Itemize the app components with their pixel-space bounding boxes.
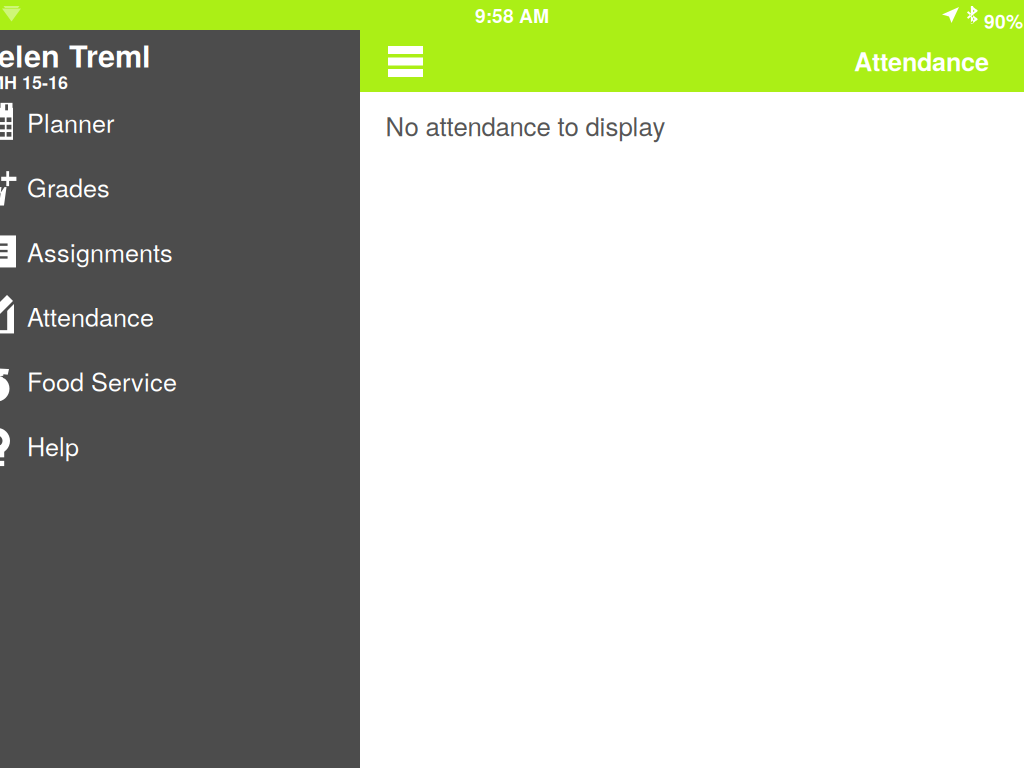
button[interactable]: Help [0,413,360,478]
button[interactable]: Assignments [0,219,360,284]
staticText: SMH 15-16 [0,69,68,95]
staticText: Attendance [854,43,989,79]
staticText: No attendance to display [385,107,665,144]
button[interactable]: Attendance [0,284,360,348]
staticText: 90% [984,7,1023,35]
staticText: Kaelen Treml [0,33,151,77]
button[interactable]: Grades [0,154,360,219]
button[interactable]: Kaelen Treml [0,30,360,89]
staticText: Grades [27,168,110,205]
staticText: Planner [27,104,114,140]
staticText: Assignments [27,233,173,269]
button[interactable]: Food Service [0,348,360,413]
staticText: Attendance [27,298,154,334]
staticText: 9:58 AM [475,1,549,29]
button[interactable]: Menu [371,30,443,92]
staticText: Help [27,427,79,463]
staticText: Food Service [27,363,177,399]
button[interactable]: Planner [0,89,360,154]
